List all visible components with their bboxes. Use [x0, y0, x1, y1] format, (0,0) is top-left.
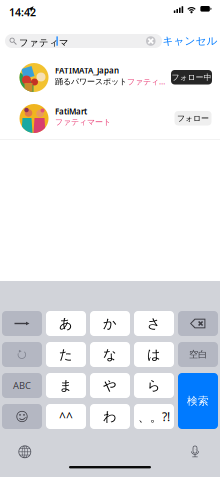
button[interactable]: Delete: [178, 311, 218, 336]
button[interactable]: か: [90, 311, 130, 336]
staticText: FATIMATA_Japan: [55, 65, 119, 76]
staticText: FatiMart: [55, 106, 87, 117]
staticText: や: [103, 377, 117, 394]
staticText: あ: [59, 315, 73, 332]
staticText: ファティ…: [127, 76, 165, 87]
button[interactable]: フォロー: [174, 111, 211, 125]
staticText: 14:42: [9, 5, 36, 19]
button[interactable]: 検索: [178, 373, 218, 429]
staticText: ファティマート: [55, 117, 111, 127]
button[interactable]: ま: [46, 373, 86, 398]
staticText: た: [59, 346, 73, 363]
button[interactable]: わ: [90, 404, 130, 429]
staticText: ら: [147, 377, 161, 394]
button[interactable]: FATIMATA_Japan: [0, 57, 220, 98]
staticText: 、。?!: [138, 408, 170, 424]
button[interactable]: あ: [46, 311, 86, 336]
button[interactable]: ABC: [2, 373, 42, 398]
staticText: フォロー中: [171, 72, 211, 82]
button[interactable]: Undo: [2, 342, 42, 367]
staticText: は: [147, 346, 161, 363]
button[interactable]: や: [90, 373, 130, 398]
staticText: な: [103, 346, 117, 363]
button[interactable]: 空白: [178, 342, 218, 367]
staticText: ま: [59, 377, 73, 394]
button[interactable]: は: [134, 342, 174, 367]
button[interactable]: Emoji: [2, 404, 42, 429]
button[interactable]: た: [46, 342, 86, 367]
staticText: さ: [147, 315, 161, 332]
staticText: か: [103, 315, 117, 332]
staticText: ABC: [13, 379, 31, 392]
staticText: わ: [103, 408, 117, 425]
staticText: ファティマ: [19, 37, 69, 48]
button[interactable]: 、。?!: [134, 404, 174, 429]
staticText: キャンセル: [162, 34, 217, 47]
button[interactable]: ファティマ: [5, 34, 162, 48]
button[interactable]: さ: [134, 311, 174, 336]
button[interactable]: ら: [134, 373, 174, 398]
staticText: フォロー: [177, 113, 209, 123]
staticText: 空白: [189, 349, 207, 360]
button[interactable]: な: [90, 342, 130, 367]
staticText: 検索: [187, 394, 209, 407]
staticText: 踊るパワースポット: [55, 77, 127, 86]
button[interactable]: Next candidate: [2, 311, 42, 336]
button[interactable]: キャンセル: [163, 34, 217, 48]
button[interactable]: フォロー中: [171, 70, 212, 84]
button[interactable]: ^^: [46, 404, 86, 429]
button[interactable]: FatiMart: [0, 98, 220, 139]
staticText: ^^: [59, 408, 73, 424]
